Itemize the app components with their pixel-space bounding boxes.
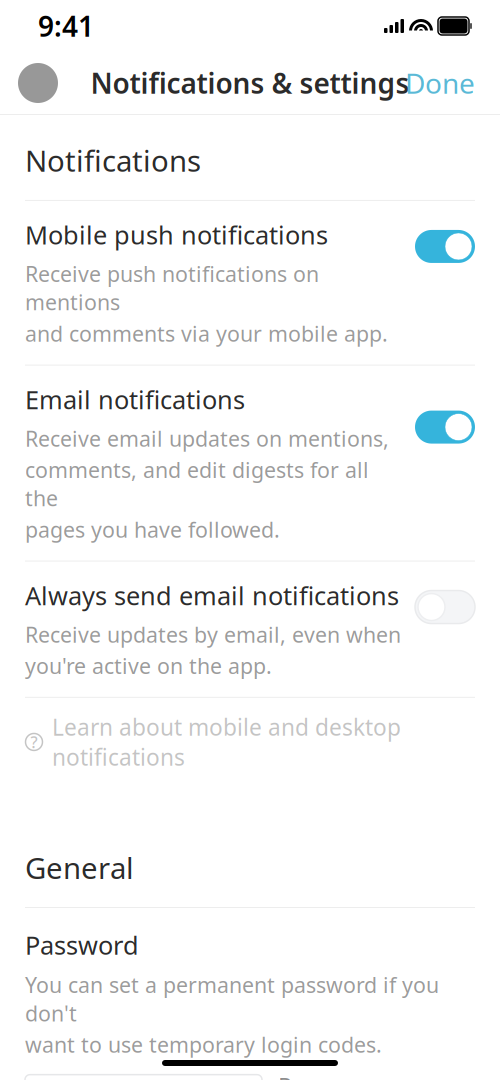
staticText: comments, and edit digests for all the [25,456,369,512]
staticText: want to use temporary login codes. [25,1030,382,1059]
staticText: Email notifications [25,383,245,416]
staticText: and comments via your mobile app. [25,319,388,348]
button[interactable]: Done [405,64,475,102]
button[interactable]: Account [18,63,58,103]
staticText: You can set a permanent password if you … [25,971,439,1027]
staticText: Mobile push notifications [25,218,328,252]
staticText: Always send email notifications [25,578,399,612]
button[interactable]: Mobile push notifications [0,201,500,365]
staticText: Receive push notifications on mentions [25,260,319,316]
button[interactable]: Remove password [262,1075,398,1080]
button[interactable]: ? [0,698,500,786]
staticText: Learn about mobile and desktop notificat… [52,712,401,772]
staticText: General [25,848,134,887]
staticText: Remove password [278,1071,382,1080]
staticText: Notifications [25,141,201,180]
staticText: ? [30,731,37,752]
staticText: 9:41 [38,7,94,45]
button[interactable]: Email notifications [0,366,500,561]
button[interactable]: Always send email notifications [0,561,500,697]
staticText: Password [25,928,139,962]
button[interactable]: Change password [25,1075,262,1080]
staticText: Notifications & settings [90,64,409,102]
staticText: you're active on the app. [25,651,272,680]
staticText: Receive email updates on mentions, [25,424,389,452]
staticText: Receive updates by email, even when [25,620,401,648]
staticText: Done [405,64,475,102]
staticText: pages you have followed. [25,515,280,543]
